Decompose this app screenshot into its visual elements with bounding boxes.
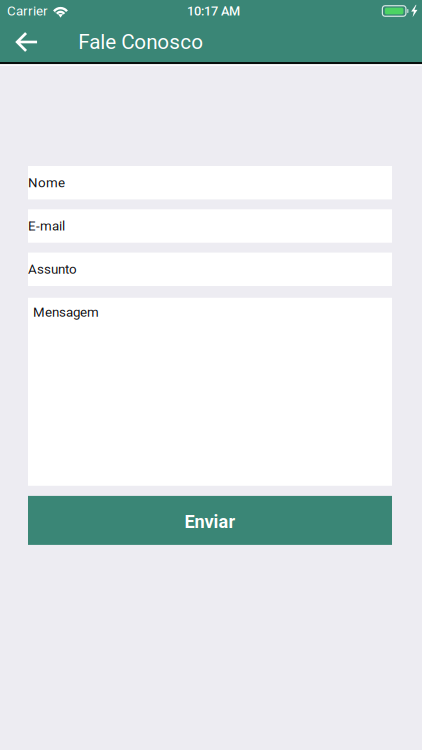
- staticText: Assunto: [28, 261, 77, 277]
- staticText: Carrier: [7, 3, 48, 19]
- staticText: Mensagem: [33, 304, 99, 320]
- button[interactable]: Assunto: [28, 253, 392, 286]
- button[interactable]: Mensagem: [28, 298, 392, 486]
- staticText: 10:17 AM: [187, 3, 240, 18]
- button[interactable]: E-mail: [28, 209, 392, 243]
- button[interactable]: Nome: [28, 166, 392, 199]
- staticText: Enviar: [184, 511, 235, 532]
- button[interactable]: Enviar: [28, 496, 392, 545]
- button[interactable]: Back: [6, 22, 48, 62]
- staticText: E-mail: [28, 218, 65, 234]
- staticText: Nome: [28, 175, 65, 190]
- staticText: Fale Conosco: [78, 30, 203, 54]
